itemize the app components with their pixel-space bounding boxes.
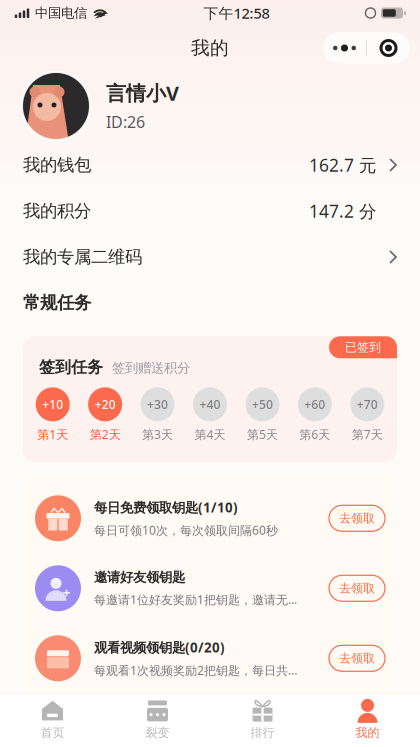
button[interactable]: 言情小V — [0, 70, 420, 142]
staticText: 第6天 — [299, 426, 330, 442]
staticText: 去领取 — [339, 651, 375, 666]
staticText: 我的积分 — [23, 200, 91, 222]
staticText: 去领取 — [339, 581, 375, 596]
staticText: 第5天 — [247, 426, 278, 442]
staticText: 我的钱包 — [23, 154, 91, 176]
button[interactable]: Close — [367, 32, 410, 63]
staticText: 每日可领10次，每次领取间隔60秒 — [94, 522, 278, 538]
staticText: 第2天 — [90, 426, 121, 442]
staticText: 我的 — [355, 725, 379, 740]
staticText: 第1天 — [37, 426, 68, 442]
button[interactable]: 去领取 — [329, 505, 385, 531]
button[interactable]: 首页 — [0, 693, 105, 747]
staticText: 第4天 — [194, 426, 225, 442]
staticText: 我的专属二维码 — [23, 246, 142, 268]
staticText: 排行 — [250, 725, 274, 740]
staticText: 第3天 — [142, 426, 173, 442]
staticText: +70 — [357, 396, 378, 412]
staticText: 去领取 — [339, 511, 375, 526]
staticText: 我的 — [191, 36, 229, 59]
staticText: 签到任务 — [39, 357, 103, 377]
button[interactable]: 我的专属二维码 — [0, 234, 420, 280]
button[interactable]: 排行 — [210, 693, 315, 747]
button[interactable]: 去领取 — [329, 575, 385, 601]
staticText: +60 — [304, 396, 325, 412]
button[interactable]: 去领取 — [329, 645, 385, 671]
staticText: +40 — [199, 396, 220, 412]
staticText: 162.7 元 — [309, 153, 376, 176]
staticText: 已签到 — [345, 340, 381, 355]
staticText: 下午12:58 — [203, 3, 269, 23]
button[interactable]: 我的 — [315, 693, 420, 747]
staticText: 每观看1次视频奖励2把钥匙，每日共20次 — [94, 662, 301, 678]
staticText: ID:26 — [106, 111, 145, 132]
button[interactable]: 我的钱包 — [0, 142, 420, 188]
button[interactable]: More — [323, 32, 366, 63]
staticText: 147.2 分 — [309, 199, 376, 222]
staticText: +10 — [42, 396, 63, 412]
button[interactable]: 我的积分 — [0, 188, 420, 234]
staticText: 常规任务 — [23, 292, 91, 313]
staticText: +30 — [147, 396, 168, 412]
staticText: 言情小V — [106, 80, 179, 106]
staticText: 观看视频领钥匙(0/20) — [94, 638, 225, 656]
staticText: 裂变 — [145, 725, 169, 740]
staticText: 邀请好友领钥匙 — [94, 569, 185, 585]
staticText: 签到赠送积分 — [112, 360, 190, 376]
staticText: 每日免费领取钥匙(1/10) — [94, 498, 238, 516]
staticText: +20 — [95, 396, 116, 412]
staticText: 中国电信 — [35, 5, 87, 21]
button[interactable]: 裂变 — [105, 693, 210, 747]
staticText: 每邀请1位好友奖励1把钥匙，邀请无上限 — [94, 591, 301, 607]
staticText: 首页 — [40, 725, 64, 740]
staticText: 第7天 — [352, 426, 383, 442]
staticText: +50 — [252, 396, 273, 412]
